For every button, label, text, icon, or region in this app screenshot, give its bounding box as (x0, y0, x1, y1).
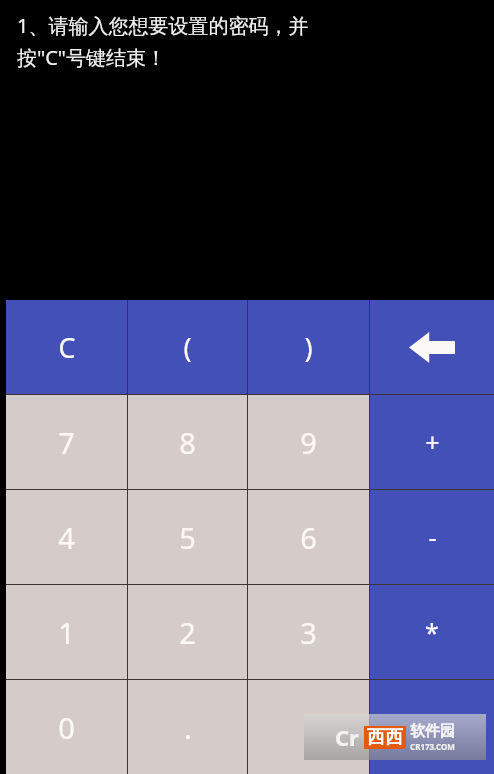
staticText: 0 (58, 708, 75, 747)
button[interactable]: 3 (248, 585, 369, 679)
button[interactable] (248, 680, 369, 774)
staticText: 4 (58, 518, 75, 557)
staticText: ( (183, 329, 192, 366)
button[interactable]: ( (128, 300, 247, 394)
button[interactable]: 1 (6, 585, 127, 679)
button[interactable]: 4 (6, 490, 127, 584)
staticText: - (428, 520, 437, 554)
button[interactable]: 9 (248, 395, 369, 489)
button[interactable]: 5 (128, 490, 247, 584)
button[interactable]: + (370, 395, 494, 489)
button[interactable]: 2 (128, 585, 247, 679)
staticText: C (58, 329, 76, 366)
staticText: 5 (179, 518, 196, 557)
button[interactable]: 6 (248, 490, 369, 584)
button[interactable]: 7 (6, 395, 127, 489)
button[interactable]: Backspace (370, 300, 494, 394)
staticText: + (425, 425, 440, 459)
staticText: 6 (300, 518, 317, 557)
button[interactable]: - (370, 490, 494, 584)
staticText: 1、请输入您想要设置的密码，并 按"C"号键结束！ (17, 12, 309, 71)
staticText: 1 (58, 613, 75, 652)
staticText: 7 (58, 423, 75, 462)
staticText: ) (304, 329, 313, 366)
staticText: 西西 (367, 726, 403, 749)
button[interactable]: C (6, 300, 127, 394)
staticText: 9 (300, 423, 317, 462)
button[interactable]: * (370, 585, 494, 679)
staticText: 3 (300, 613, 317, 652)
staticText: . (184, 708, 192, 747)
staticText: * (425, 615, 439, 649)
staticText: CR173.COM (410, 741, 455, 752)
staticText: 8 (179, 423, 196, 462)
button[interactable] (370, 680, 494, 774)
button[interactable]: 8 (128, 395, 247, 489)
staticText: Cr (335, 722, 359, 752)
staticText: 2 (179, 613, 196, 652)
button[interactable]: ) (248, 300, 369, 394)
button[interactable]: 0 (6, 680, 127, 774)
staticText: 软件园 (410, 722, 455, 741)
